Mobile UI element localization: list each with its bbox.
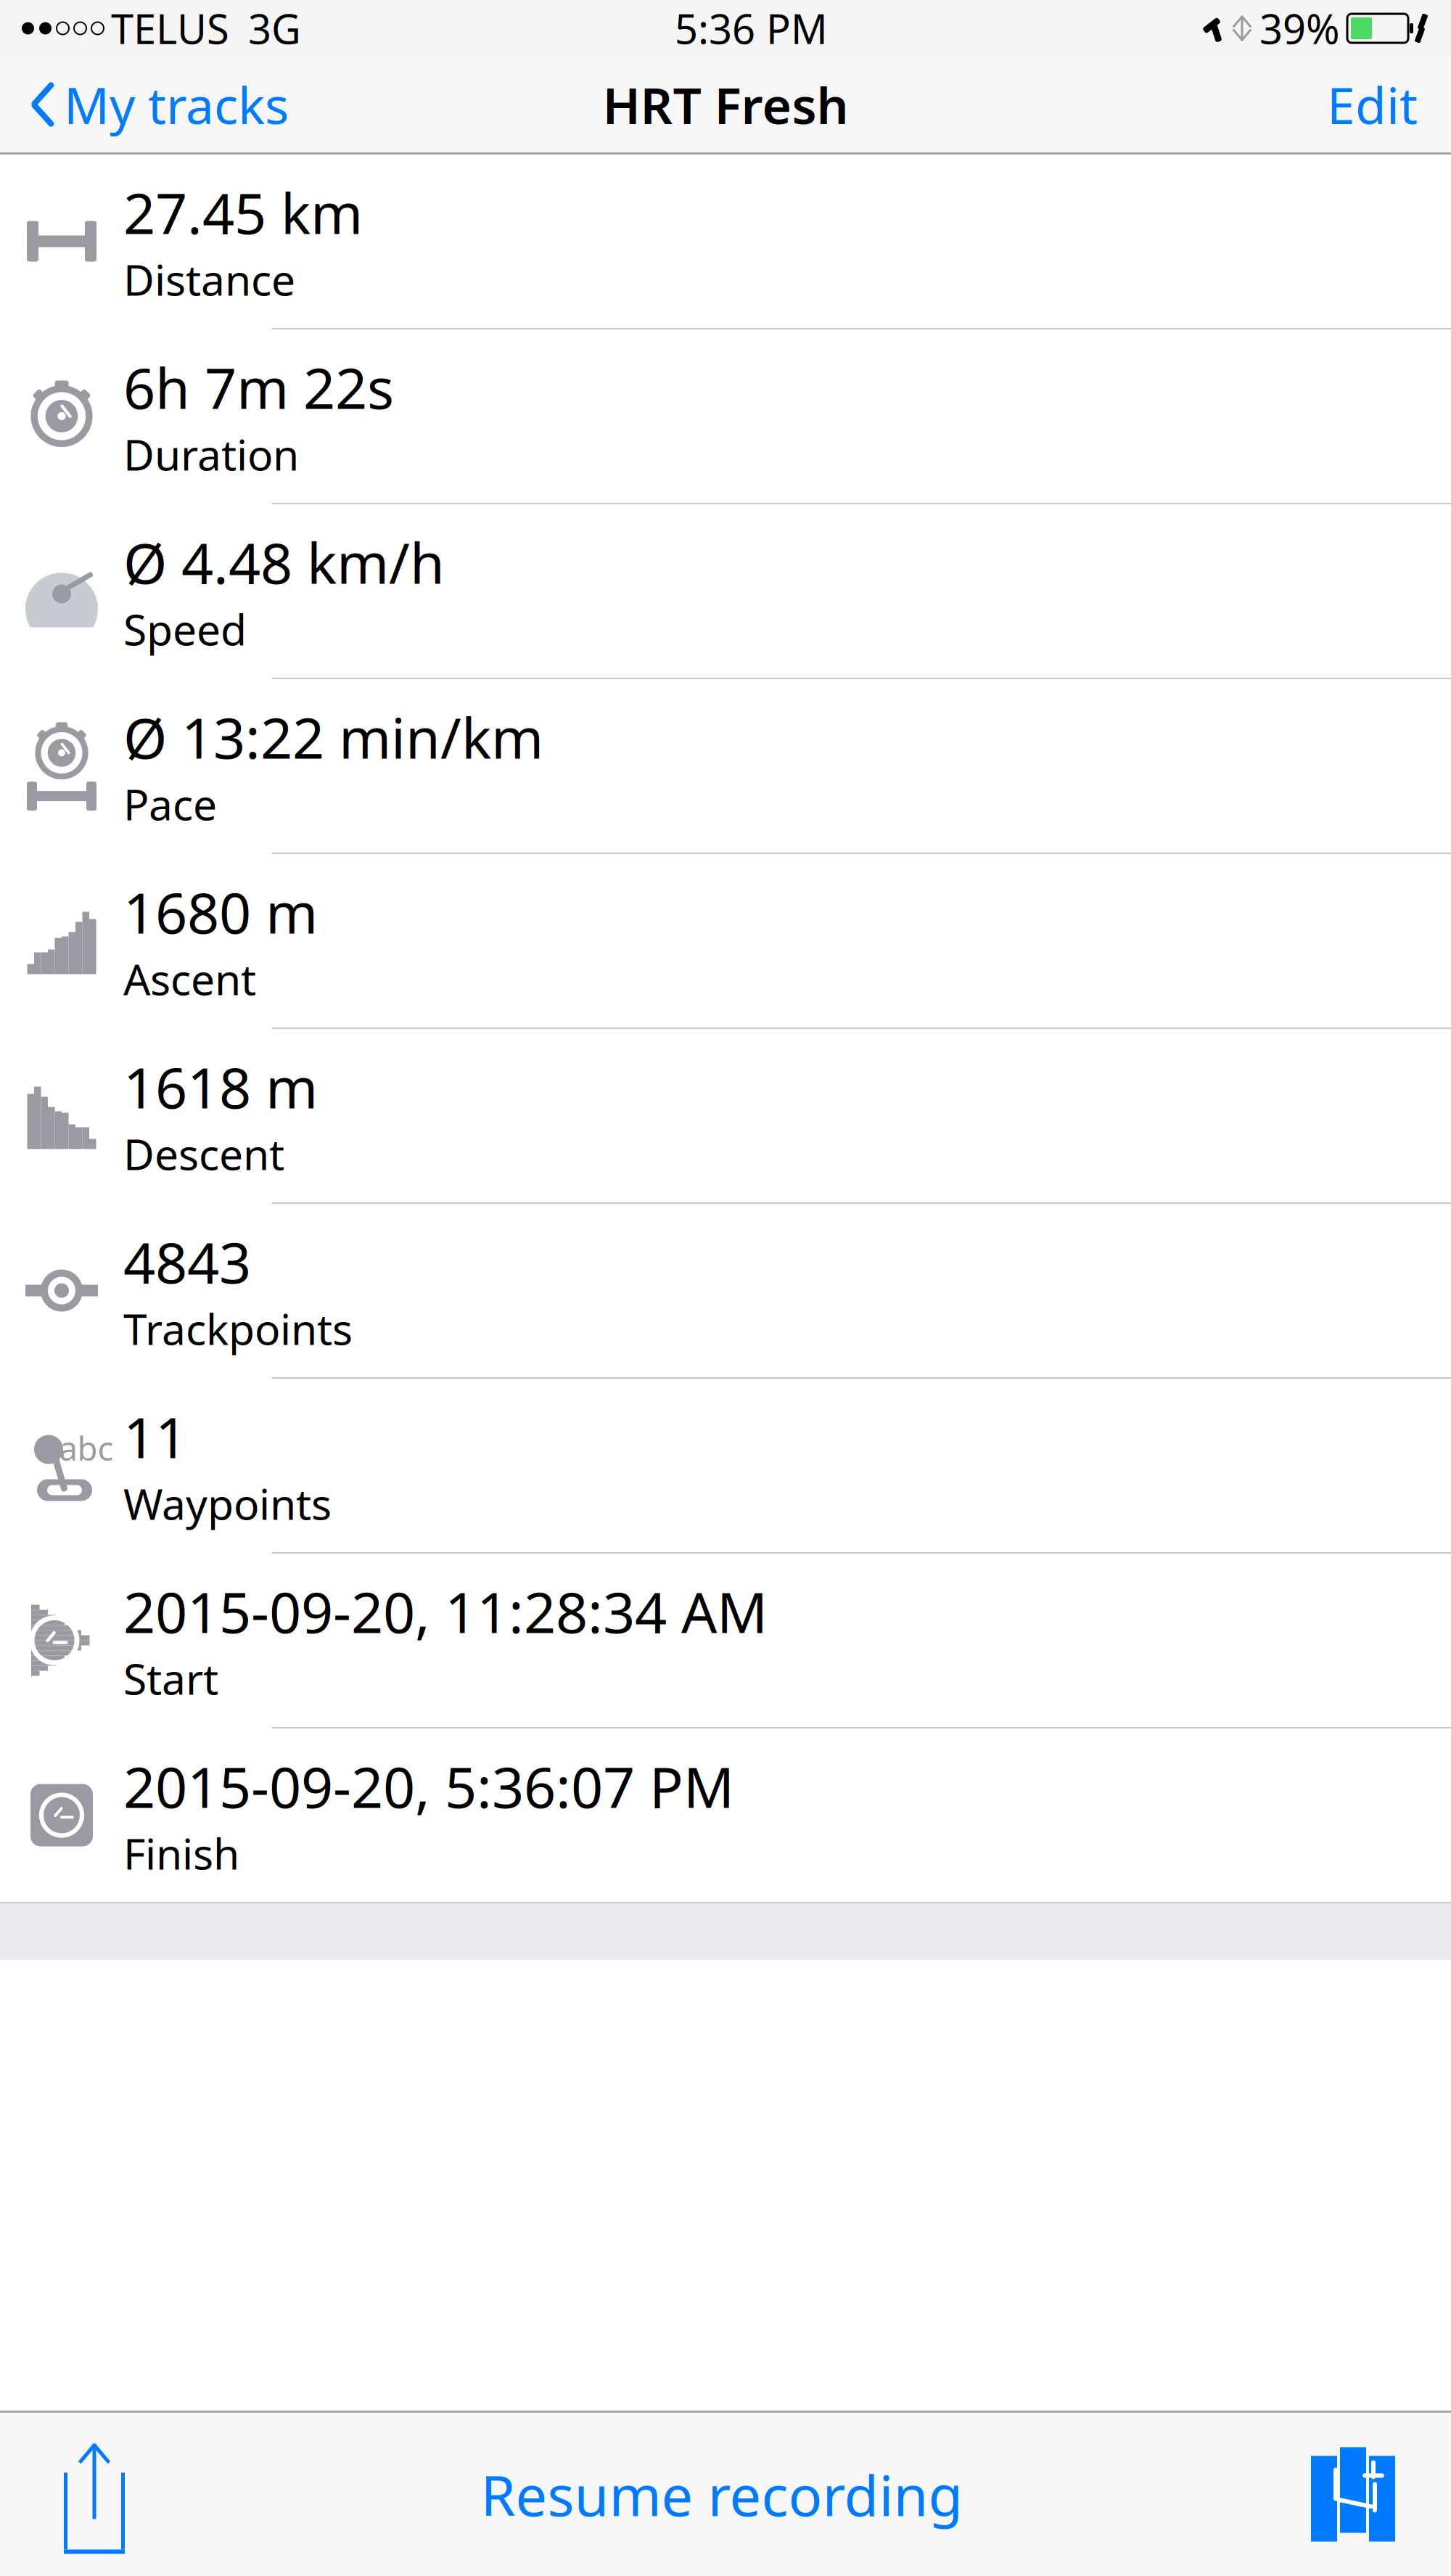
button[interactable]: 27.45 km xyxy=(0,155,1451,329)
button[interactable]: Edit xyxy=(1312,61,1432,148)
staticText: abc xyxy=(59,1426,114,1470)
staticText: 27.45 km xyxy=(123,175,363,250)
staticText: 4843 xyxy=(123,1224,251,1299)
staticText: 1680 m xyxy=(123,875,318,949)
button[interactable]: 2015-09-20, 5:36:07 PM xyxy=(0,1728,1451,1902)
staticText: Edit xyxy=(1327,71,1418,138)
staticText: Finish xyxy=(123,1825,239,1881)
button[interactable]: Resume recording xyxy=(459,2443,985,2546)
staticText: Ø 4.48 km/h xyxy=(123,525,445,599)
staticText: Descent xyxy=(123,1125,284,1182)
staticText: Start xyxy=(123,1650,218,1707)
staticText: Trackpoints xyxy=(123,1300,353,1357)
button[interactable]: Show map xyxy=(1284,2436,1422,2553)
staticText: TELUS xyxy=(111,1,229,55)
button[interactable]: abc xyxy=(0,1379,1451,1554)
staticText: Waypoints xyxy=(123,1475,332,1532)
button[interactable]: 2015-09-20, 11:28:34 AM xyxy=(0,1554,1451,1728)
button[interactable]: Ø 4.48 km/h xyxy=(0,504,1451,679)
staticText: Duration xyxy=(123,426,299,482)
button[interactable]: 4843 xyxy=(0,1204,1451,1379)
staticText: HRT Fresh xyxy=(603,71,848,138)
staticText: 5:36 PM xyxy=(675,1,828,55)
staticText: 2015-09-20, 11:28:34 AM xyxy=(123,1574,768,1649)
button[interactable]: My tracks xyxy=(19,61,300,148)
staticText: 6h 7m 22s xyxy=(123,350,394,424)
staticText: My tracks xyxy=(64,71,289,138)
button[interactable]: Share xyxy=(29,2425,160,2564)
staticText: 11 xyxy=(123,1399,187,1474)
button[interactable]: 1680 m xyxy=(0,854,1451,1029)
staticText: 39% xyxy=(1259,1,1340,55)
button[interactable]: 1618 m xyxy=(0,1029,1451,1204)
staticText: Speed xyxy=(123,601,247,657)
staticText: Distance xyxy=(123,251,295,308)
staticText: 3G xyxy=(248,1,301,55)
button[interactable]: 6h 7m 22s xyxy=(0,329,1451,504)
staticText: Resume recording xyxy=(481,2457,963,2532)
staticText: 2015-09-20, 5:36:07 PM xyxy=(123,1749,734,1823)
staticText: Pace xyxy=(123,776,217,832)
staticText: 1618 m xyxy=(123,1049,318,1124)
staticText: Ø 13:22 min/km xyxy=(123,700,543,774)
staticText: Ascent xyxy=(123,951,256,1007)
button[interactable]: Ø 13:22 min/km xyxy=(0,679,1451,854)
